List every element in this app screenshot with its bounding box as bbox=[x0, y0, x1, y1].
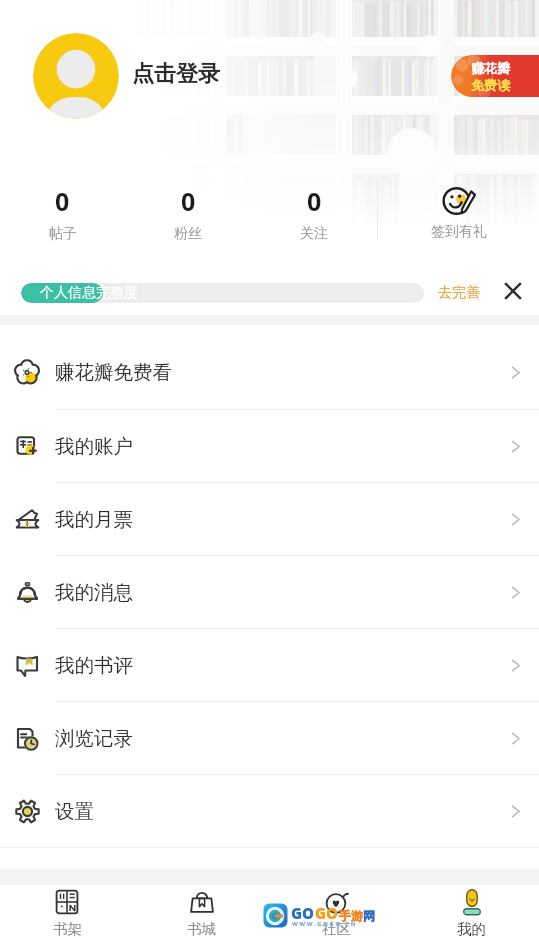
staticText: 个人信息完整度 bbox=[40, 284, 138, 302]
staticText: 帖子 bbox=[49, 225, 77, 243]
button[interactable]: 我的 bbox=[404, 885, 539, 938]
staticText: W W W . G O G O . C N bbox=[292, 920, 356, 928]
staticText: 书架 bbox=[53, 920, 82, 938]
button[interactable]: 0 bbox=[125, 178, 251, 258]
button[interactable]: 赚花瓣免费看 bbox=[0, 336, 539, 409]
staticText: 手游 bbox=[339, 908, 363, 923]
staticText: 我的账户 bbox=[55, 434, 133, 459]
button[interactable]: 书架 bbox=[0, 885, 134, 938]
button[interactable] bbox=[33, 33, 119, 119]
staticText: 0 bbox=[181, 184, 196, 218]
button[interactable]: 我的月票 bbox=[0, 483, 539, 555]
staticText: 0 bbox=[55, 184, 70, 218]
button[interactable]: 书城 bbox=[134, 885, 269, 938]
button[interactable]: 赚花瓣 bbox=[451, 55, 539, 97]
button[interactable]: 浏览记录 bbox=[0, 702, 539, 774]
button[interactable]: 我的消息 bbox=[0, 556, 539, 628]
staticText: 免费读 bbox=[471, 77, 510, 93]
staticText: 我的书评 bbox=[55, 653, 133, 678]
staticText: 网 bbox=[363, 908, 375, 923]
button[interactable]: 设置 bbox=[0, 775, 539, 847]
staticText: 浏览记录 bbox=[55, 726, 133, 751]
button[interactable]: 签到有礼 bbox=[431, 178, 487, 241]
button[interactable]: 我的账户 bbox=[0, 410, 539, 482]
button[interactable]: 0 bbox=[251, 178, 377, 258]
staticText: 0 bbox=[307, 184, 322, 218]
staticText: 设置 bbox=[55, 799, 94, 824]
staticText: 赚花瓣免费看 bbox=[55, 360, 172, 385]
button[interactable]: 0 bbox=[0, 178, 125, 258]
button[interactable]: 社区 bbox=[269, 885, 404, 938]
staticText: 书城 bbox=[187, 920, 216, 938]
staticText: 我的 bbox=[457, 920, 486, 938]
staticText: GO bbox=[315, 903, 339, 923]
staticText: 我的月票 bbox=[55, 507, 133, 532]
staticText: 我的消息 bbox=[55, 580, 133, 605]
button[interactable]: 去完善 bbox=[438, 284, 480, 302]
staticText: GO bbox=[291, 903, 315, 923]
staticText: 粉丝 bbox=[174, 225, 202, 243]
staticText: 赚花瓣 bbox=[471, 60, 510, 76]
button[interactable]: 关闭 bbox=[500, 278, 526, 304]
staticText: 签到有礼 bbox=[431, 223, 487, 241]
button[interactable]: 点击登录 bbox=[132, 60, 220, 88]
button[interactable]: 我的书评 bbox=[0, 629, 539, 701]
staticText: 关注 bbox=[300, 225, 328, 243]
staticText: 社区 bbox=[322, 920, 351, 938]
